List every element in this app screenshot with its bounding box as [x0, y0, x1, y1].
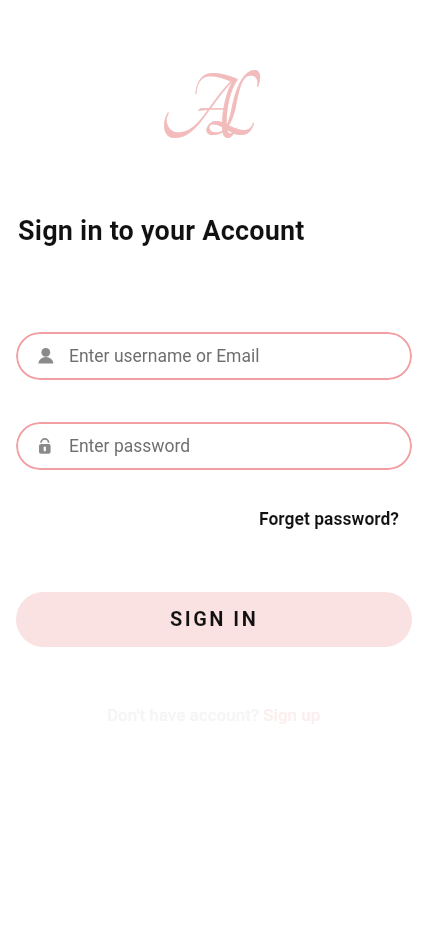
- staticText: L: [204, 60, 255, 160]
- button[interactable]: SIGN IN: [16, 592, 412, 647]
- staticText: SIGN IN: [170, 607, 259, 630]
- button[interactable]: Enter password: [16, 422, 412, 470]
- staticText: Don't have account? Sign up: [107, 705, 321, 725]
- button[interactable]: Forget password?: [259, 509, 400, 530]
- staticText: Forget password?: [259, 509, 400, 530]
- button[interactable]: Don't have account? Sign up: [107, 705, 321, 725]
- staticText: A: [161, 63, 237, 163]
- button[interactable]: Enter username or Email: [16, 332, 412, 380]
- staticText: Enter username or Email: [69, 346, 260, 367]
- staticText: Sign in to your Account: [18, 215, 305, 247]
- staticText: Enter password: [69, 436, 191, 457]
